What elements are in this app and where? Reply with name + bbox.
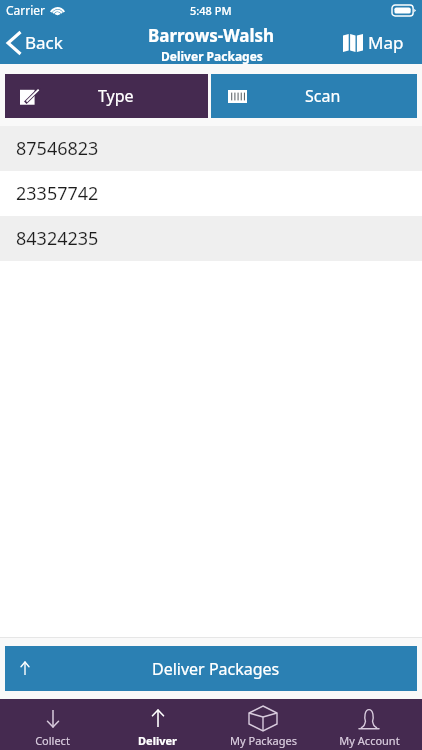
staticText: Barrows-Walsh [148, 24, 275, 47]
other: Deliver [152, 710, 164, 727]
staticText: Map [368, 31, 404, 54]
staticText: My Packages [230, 733, 297, 748]
other: Collect [47, 710, 59, 727]
other: Back [7, 33, 20, 53]
button[interactable]: Map [333, 25, 422, 60]
button[interactable]: Deliver Packages [5, 646, 417, 691]
button[interactable]: 23357742 [0, 171, 422, 216]
staticText: 84324235 [16, 226, 99, 251]
staticText: Deliver [138, 733, 177, 748]
button[interactable]: Scan [211, 74, 417, 118]
staticText: 87546823 [16, 136, 99, 161]
other: Map [343, 34, 363, 52]
other: My Packages [249, 706, 277, 731]
button[interactable]: Deliver [105, 699, 210, 750]
staticText: 23357742 [16, 181, 99, 206]
button[interactable]: Collect [0, 699, 105, 750]
other: Wi-Fi [50, 5, 65, 16]
staticText: My Account [339, 733, 400, 748]
staticText: Type [98, 85, 134, 107]
button[interactable]: My Account [316, 699, 422, 750]
button[interactable]: 87546823 [0, 126, 422, 171]
staticText: Deliver Packages [152, 658, 280, 680]
staticText: Carrier [6, 2, 46, 18]
button[interactable]: 84324235 [0, 216, 422, 261]
staticText: Back [25, 31, 63, 54]
button[interactable]: Back [0, 25, 73, 60]
other: My Account [359, 709, 379, 729]
button[interactable]: My Packages [210, 699, 316, 750]
button[interactable]: Type [5, 74, 208, 118]
staticText: Deliver Packages [161, 48, 263, 64]
staticText: Collect [35, 733, 70, 748]
staticText: 5:48 PM [190, 3, 232, 18]
staticText: Scan [305, 85, 341, 107]
